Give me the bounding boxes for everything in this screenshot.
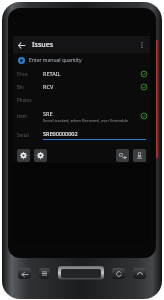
button[interactable]: Item — [13, 106, 150, 126]
button[interactable]: Bin — [13, 80, 150, 93]
button[interactable]: Hardware key — [133, 268, 146, 279]
button[interactable]: Enter manual quantity — [13, 53, 150, 67]
staticText: Serial — [17, 132, 43, 138]
button[interactable]: Configure — [34, 149, 47, 162]
button[interactable]: Settings — [17, 149, 30, 162]
button[interactable]: More options — [134, 37, 150, 53]
staticText: Enter manual quantity — [29, 57, 82, 64]
button[interactable]: Back — [13, 37, 29, 53]
staticText: Bin — [17, 84, 43, 90]
staticText: RCV — [43, 83, 54, 90]
button[interactable]: Hardware key — [39, 268, 50, 279]
button[interactable]: Hardware key — [18, 268, 31, 279]
staticText: Photos — [17, 97, 43, 103]
button[interactable]: Serial — [13, 126, 150, 143]
button[interactable]: Transfer — [116, 149, 129, 162]
staticText: SRE00000002 — [43, 130, 78, 137]
staticText: Serial tracked, when Received, user Ente… — [43, 118, 129, 123]
staticText: Item — [17, 113, 43, 119]
button[interactable]: Photos — [13, 93, 150, 106]
staticText: SRE — [43, 110, 53, 117]
button[interactable]: Hardware key — [112, 268, 125, 279]
button[interactable]: Save — [133, 149, 146, 162]
staticText: RETAIL — [43, 70, 61, 77]
button[interactable]: Scan — [58, 266, 104, 280]
button[interactable]: Price — [13, 67, 150, 80]
staticText: Price — [17, 71, 43, 77]
staticText: Issues — [32, 40, 54, 50]
